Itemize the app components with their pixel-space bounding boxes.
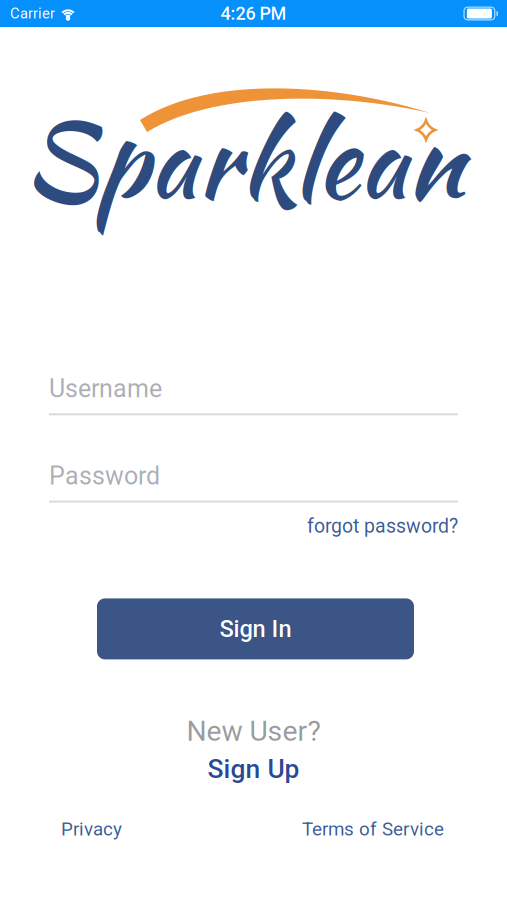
button[interactable]: forgot password? xyxy=(307,515,458,537)
button[interactable]: Password text field xyxy=(0,461,507,503)
button[interactable]: Sign Up xyxy=(207,753,299,784)
staticText: Username xyxy=(49,374,162,403)
staticText: Sparklean xyxy=(23,84,463,235)
staticText: Terms of Service xyxy=(302,818,444,840)
button[interactable]: Terms of Service xyxy=(302,818,444,840)
staticText: Privacy xyxy=(61,818,122,840)
staticText: 4:26 PM xyxy=(220,3,286,24)
button[interactable]: Privacy xyxy=(61,818,122,840)
staticText: New User? xyxy=(186,714,320,747)
staticText: Carrier xyxy=(10,5,55,22)
staticText: Sign Up xyxy=(207,753,299,784)
staticText: Password xyxy=(49,461,160,491)
staticText: forgot password? xyxy=(307,515,458,537)
button[interactable]: Username text field xyxy=(0,374,507,415)
button[interactable]: Sign In xyxy=(97,598,414,659)
staticText: Sign In xyxy=(219,615,291,643)
